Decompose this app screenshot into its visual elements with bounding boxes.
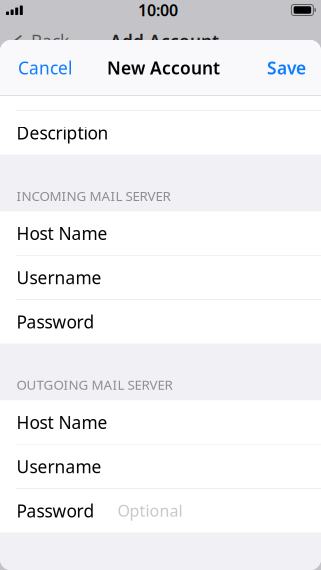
button[interactable]: Cancel xyxy=(12,48,78,87)
button[interactable]: Password xyxy=(0,300,321,343)
staticText: Host Name xyxy=(16,411,107,434)
staticText: Save xyxy=(267,56,306,79)
staticText: Add Account xyxy=(110,29,219,52)
button[interactable]: Password xyxy=(0,489,321,532)
staticText: Cancel xyxy=(18,56,72,79)
staticText: Back xyxy=(31,29,69,52)
staticText: Optional xyxy=(117,500,182,521)
staticText: Password xyxy=(16,499,94,522)
staticText: INCOMING MAIL SERVER xyxy=(16,187,170,205)
button[interactable]: Description xyxy=(0,111,321,155)
button[interactable]: Host Name xyxy=(0,212,321,255)
staticText: Username xyxy=(16,266,101,289)
button[interactable]: Back xyxy=(13,29,69,52)
button[interactable]: Username xyxy=(0,445,321,488)
button[interactable]: Host Name xyxy=(0,400,321,444)
staticText: Password xyxy=(16,310,94,333)
staticText: Host Name xyxy=(16,222,107,245)
staticText: Username xyxy=(16,455,101,478)
button[interactable]: Save xyxy=(261,48,312,87)
staticText: Description xyxy=(16,121,108,144)
button[interactable]: Username xyxy=(0,256,321,299)
staticText: 10:00 xyxy=(138,0,178,21)
staticText: New Account xyxy=(107,56,220,79)
staticText: OUTGOING MAIL SERVER xyxy=(16,376,172,393)
